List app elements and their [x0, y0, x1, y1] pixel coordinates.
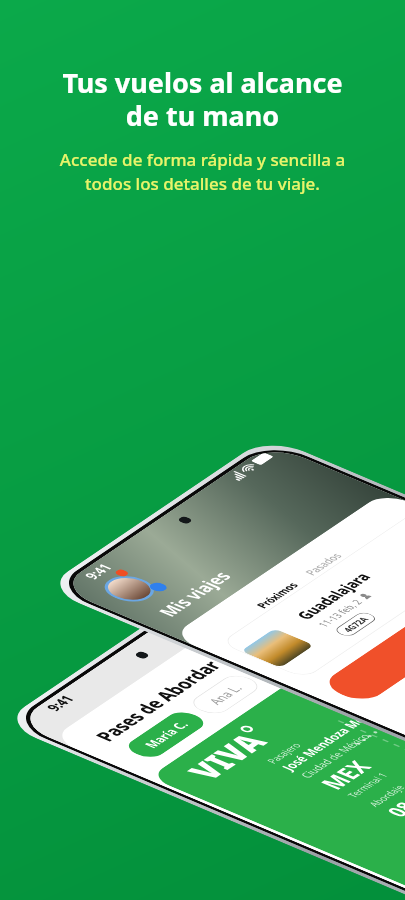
staticText: MEX	[311, 756, 379, 794]
staticText: Mis viajes	[152, 568, 238, 620]
staticText: Pasajero	[263, 740, 305, 765]
staticText: Guadalajara	[291, 570, 376, 622]
staticText: 11-13 feb, 2	[314, 597, 366, 629]
staticText: Próximos	[252, 580, 302, 610]
staticText: María C.	[139, 719, 193, 750]
staticText: Pasados	[301, 551, 345, 577]
staticText: Accede de forma rápida y sencilla a todo…	[14, 148, 391, 195]
button[interactable]: Check-in	[319, 550, 405, 704]
staticText: 9:41	[79, 561, 116, 582]
staticText: Tus vuelos al alcance de tu mano	[14, 64, 391, 134]
staticText: 4G72A	[339, 615, 372, 634]
button[interactable]: María C.	[122, 708, 210, 761]
staticText: Abordaje	[365, 783, 405, 808]
staticText: Terminal 1	[343, 770, 392, 799]
staticText: Ciudad de México	[296, 731, 373, 780]
staticText: Ana L.	[204, 682, 247, 707]
button[interactable]: Pasados	[301, 551, 345, 577]
staticText: 08:30 AM	[379, 767, 405, 820]
staticText: 9:41	[41, 693, 78, 713]
button[interactable]: Próximos	[252, 580, 310, 613]
button[interactable]: Ana L.	[186, 672, 265, 717]
staticText: José Mendoza Medina Oc	[277, 692, 403, 773]
staticText: Pases de Abordar	[88, 657, 229, 745]
staticText: VIVA	[175, 727, 279, 786]
button[interactable]: Guadalajara	[220, 508, 405, 679]
